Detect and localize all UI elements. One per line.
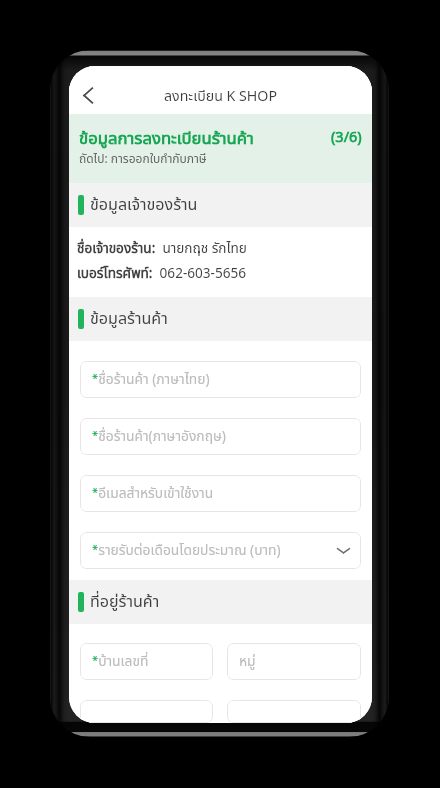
staticText: *อีเมลสำหรับเข้าใช้งาน: [92, 483, 214, 504]
button[interactable]: *อีเมลสำหรับเข้าใช้งาน: [80, 475, 361, 512]
button[interactable]: *ชื่อร้านค้า (ภาษาไทย): [80, 361, 361, 398]
button[interactable]: Back: [71, 79, 104, 112]
button[interactable]: *ชื่อร้านค้า(ภาษาอังกฤษ): [80, 418, 361, 455]
staticText: หมู่: [239, 651, 256, 672]
staticText: *รายรับต่อเดือนโดยประมาณ (บาท): [92, 540, 281, 561]
staticText: ข้อมูลร้านค้า: [90, 307, 168, 331]
staticText: (3/6): [331, 127, 362, 149]
button[interactable]: [80, 700, 213, 723]
staticText: *ชื่อร้านค้า (ภาษาไทย): [92, 369, 210, 390]
staticText: ที่อยู่ร้านค้า: [90, 590, 160, 614]
button[interactable]: *บ้านเลขที่: [80, 643, 213, 680]
staticText: *บ้านเลขที่: [92, 651, 149, 672]
staticText: ถัดไป: การออกใบกำกับภาษี: [79, 150, 207, 168]
staticText: เบอร์โทรศัพท์: 062-603-5656: [77, 264, 247, 285]
staticText: ชื่อเจ้าของร้าน: นายกฤช รักไทย: [77, 239, 247, 260]
staticText: ลงทะเบียน K SHOP: [164, 86, 278, 107]
staticText: *ชื่อร้านค้า(ภาษาอังกฤษ): [92, 426, 226, 447]
button[interactable]: หมู่: [227, 643, 361, 680]
button[interactable]: [227, 700, 361, 723]
staticText: ข้อมูลการลงทะเบียนร้านค้า: [79, 126, 254, 151]
button[interactable]: *รายรับต่อเดือนโดยประมาณ (บาท): [80, 532, 361, 569]
staticText: ข้อมูลเจ้าของร้าน: [90, 193, 198, 217]
